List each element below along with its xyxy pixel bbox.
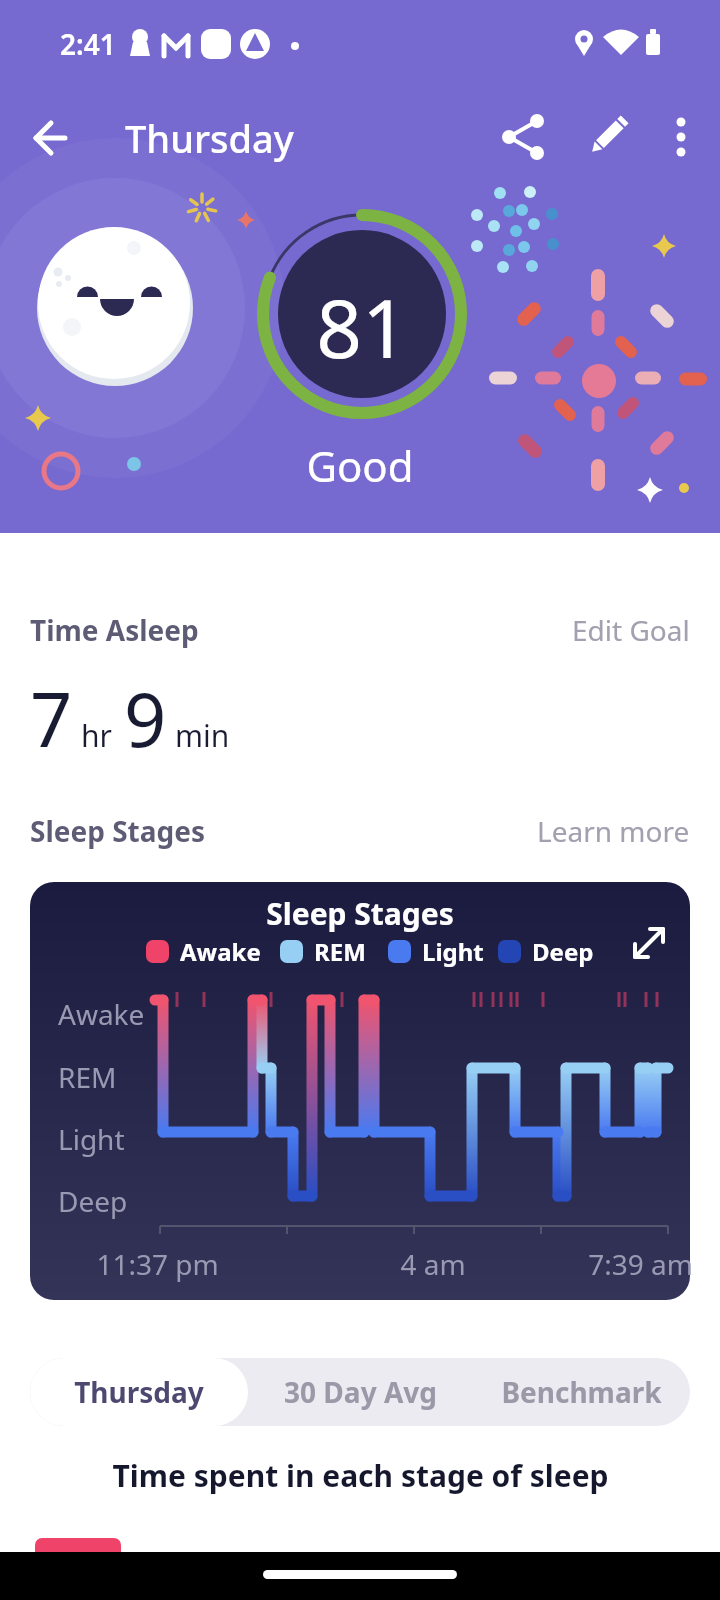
staticText: Awake — [58, 995, 145, 1033]
staticText: Thursday — [125, 112, 294, 164]
staticText: Thursday — [74, 1373, 204, 1411]
staticText: Sleep Stages — [266, 893, 454, 934]
staticText: min — [175, 715, 230, 756]
staticText: Awake — [180, 935, 261, 968]
staticText: hr — [81, 715, 112, 756]
staticText: Time spent in each stage of sleep — [112, 1455, 609, 1496]
staticText: REM — [314, 935, 366, 968]
staticText: Time Asleep — [30, 611, 199, 649]
button[interactable] — [657, 113, 705, 161]
button[interactable] — [501, 113, 549, 161]
button[interactable] — [30, 882, 690, 1300]
staticText: 7:39 am — [588, 1245, 693, 1283]
button[interactable]: Edit Goal — [390, 585, 690, 675]
staticText: 7 — [30, 668, 73, 769]
button[interactable] — [30, 1358, 248, 1426]
button[interactable] — [26, 114, 74, 162]
staticText: Learn more — [537, 812, 690, 850]
staticText: 11:37 pm — [96, 1245, 219, 1283]
staticText: REM — [58, 1058, 117, 1096]
button[interactable] — [622, 916, 674, 968]
staticText: Deep — [58, 1182, 128, 1220]
staticText: Light — [58, 1120, 125, 1158]
staticText: 9 — [124, 668, 167, 769]
staticText: Deep — [532, 935, 594, 968]
staticText: 81 — [316, 272, 408, 362]
staticText: 30 Day Avg — [284, 1373, 437, 1411]
staticText: Light — [422, 935, 484, 968]
staticText: Benchmark — [501, 1373, 662, 1411]
staticText: Sleep Stages — [30, 812, 206, 850]
staticText: 2:41 — [60, 25, 116, 63]
staticText: Edit Goal — [572, 611, 690, 649]
button[interactable]: Learn more — [390, 786, 690, 876]
staticText: Good — [306, 437, 414, 494]
button[interactable] — [470, 1358, 690, 1426]
button[interactable] — [248, 1358, 470, 1426]
button[interactable] — [583, 113, 631, 161]
staticText: 4 am — [400, 1245, 466, 1283]
